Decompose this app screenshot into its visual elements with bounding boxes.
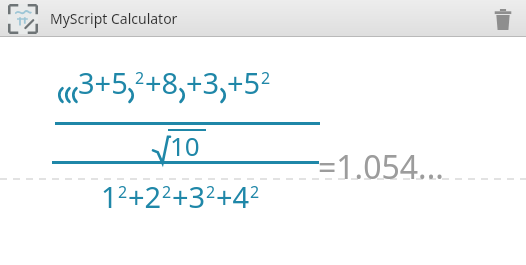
staticText: 2 bbox=[261, 67, 271, 89]
staticText: MyScript Calculator bbox=[50, 9, 178, 28]
staticText: +4 bbox=[216, 177, 250, 216]
staticText: 2 bbox=[118, 181, 128, 203]
staticText: 3+5 bbox=[78, 63, 128, 102]
button[interactable]: App icon bbox=[8, 4, 38, 34]
staticText: +3 bbox=[186, 63, 220, 102]
staticText: 2 bbox=[206, 181, 216, 203]
staticText: 10 bbox=[170, 128, 200, 163]
staticText: 1 bbox=[101, 177, 118, 216]
staticText: +3 bbox=[172, 177, 206, 216]
staticText: 2 bbox=[135, 67, 145, 89]
staticText: +8 bbox=[145, 63, 179, 102]
staticText: 2 bbox=[250, 181, 260, 203]
staticText: +5 bbox=[227, 63, 261, 102]
staticText: +2 bbox=[128, 177, 162, 216]
button[interactable]: Delete bbox=[488, 4, 518, 34]
staticText: 2 bbox=[162, 181, 172, 203]
staticText: =1.054... bbox=[318, 145, 444, 189]
